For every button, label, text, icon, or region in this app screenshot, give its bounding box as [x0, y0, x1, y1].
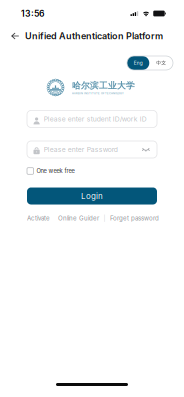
button[interactable]: Online Guider	[50, 214, 99, 222]
staticText: 哈尔滨工业大学	[72, 80, 135, 91]
button[interactable]: Forget password	[110, 214, 159, 222]
staticText: |	[103, 214, 105, 222]
staticText: Login	[81, 191, 103, 201]
staticText: Forget password	[110, 214, 159, 222]
staticText: Please enter Password	[44, 145, 118, 154]
button[interactable]: Back	[8, 28, 22, 44]
staticText: Eng	[134, 60, 143, 66]
staticText: Unified Authentication Platform	[25, 30, 163, 41]
staticText: HARBIN INSTITUTE OF TECHNOLOGY	[72, 92, 124, 95]
button[interactable]: Show password	[141, 145, 150, 153]
staticText: 13:56	[21, 8, 45, 19]
button[interactable]: One week free	[27, 166, 157, 175]
button[interactable]: Activate	[27, 214, 50, 222]
button[interactable]: Eng	[127, 56, 149, 70]
staticText: Online Guider	[58, 214, 99, 222]
staticText: 中文	[156, 60, 166, 66]
staticText: One week free	[37, 167, 75, 174]
staticText: Activate	[27, 214, 50, 222]
button[interactable]: 中文	[149, 56, 173, 70]
staticText: Please enter student ID/work ID	[44, 115, 146, 123]
button[interactable]: Login	[27, 187, 157, 204]
